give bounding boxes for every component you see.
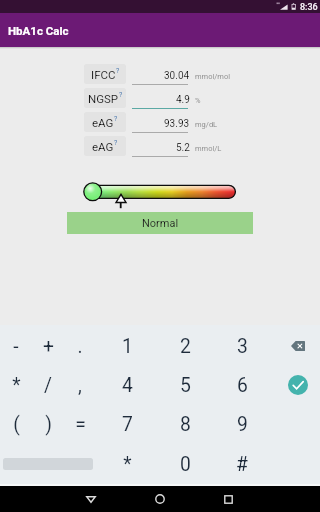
staticText: mmol/L xyxy=(195,144,222,153)
staticText: mmol/mol xyxy=(195,72,231,81)
staticText: 5.2 xyxy=(176,142,190,154)
staticText: . xyxy=(77,335,83,358)
button[interactable]: 4 xyxy=(105,365,149,405)
button[interactable]: 6 xyxy=(220,365,264,405)
staticText: 9 xyxy=(237,413,248,436)
button[interactable]: 0 xyxy=(163,444,207,484)
staticText: 1 xyxy=(122,335,133,358)
button[interactable]: Enter xyxy=(278,365,318,405)
staticText: ( xyxy=(13,413,20,436)
staticText: % xyxy=(195,96,201,105)
button[interactable]: + xyxy=(26,326,70,366)
staticText: = xyxy=(75,413,86,436)
button[interactable]: 5 xyxy=(163,365,207,405)
staticText: # xyxy=(236,453,248,476)
button[interactable]: 4.9 xyxy=(132,88,188,109)
staticText: ) xyxy=(45,413,52,436)
button[interactable]: 2 xyxy=(163,326,207,366)
staticText: 30.04 xyxy=(164,70,190,82)
staticText: + xyxy=(43,335,54,358)
button[interactable]: Back xyxy=(75,486,107,512)
staticText: 93.93 xyxy=(164,118,190,130)
staticText: 0 xyxy=(180,453,191,476)
button[interactable]: # xyxy=(220,444,264,484)
staticText: 8:36 xyxy=(300,2,318,13)
staticText: eAG xyxy=(92,116,114,129)
button[interactable]: 8 xyxy=(163,404,207,444)
button[interactable]: * xyxy=(105,444,149,484)
staticText: Normal xyxy=(142,217,179,230)
button[interactable]: 5.2 xyxy=(132,136,188,157)
button[interactable]: 3 xyxy=(220,326,264,366)
button[interactable]: Backspace xyxy=(278,326,318,366)
button[interactable]: ) xyxy=(26,404,70,444)
staticText: ? xyxy=(114,115,118,123)
button[interactable]: IFCC xyxy=(84,64,126,84)
button[interactable]: NGSP xyxy=(84,88,126,108)
staticText: eAG xyxy=(92,140,114,153)
button[interactable]: 93.93 xyxy=(132,112,188,133)
button[interactable]: Home xyxy=(144,486,176,512)
staticText: 4.9 xyxy=(176,94,190,106)
button[interactable]: eAG xyxy=(84,112,126,132)
button[interactable]: 9 xyxy=(220,404,264,444)
button[interactable]: / xyxy=(26,365,70,405)
button[interactable]: 1 xyxy=(105,326,149,366)
button[interactable]: . xyxy=(58,326,102,366)
staticText: 4 xyxy=(122,374,133,397)
staticText: / xyxy=(44,374,52,397)
staticText: , xyxy=(78,374,82,397)
button[interactable]: 7 xyxy=(105,404,149,444)
staticText: HbA1c Calc xyxy=(8,24,69,37)
staticText: - xyxy=(13,335,19,358)
button[interactable]: 30.04 xyxy=(132,64,188,85)
staticText: NGSP xyxy=(88,92,119,105)
staticText: ? xyxy=(114,139,118,147)
button[interactable]: Recents xyxy=(212,486,244,512)
button[interactable]: - xyxy=(0,326,38,366)
staticText: IFCC xyxy=(91,68,116,81)
staticText: * xyxy=(12,374,21,397)
staticText: 6 xyxy=(237,374,248,397)
staticText: * xyxy=(123,453,132,476)
button[interactable]: = xyxy=(58,404,102,444)
button[interactable]: , xyxy=(58,365,102,405)
button[interactable]: ( xyxy=(0,404,38,444)
staticText: 8 xyxy=(180,413,191,436)
staticText: mg/dL xyxy=(195,120,218,129)
staticText: 3 xyxy=(237,335,248,358)
staticText: 5 xyxy=(180,374,191,397)
staticText: 2 xyxy=(180,335,191,358)
staticText: ? xyxy=(116,67,120,75)
staticText: ? xyxy=(119,91,123,99)
button[interactable]: eAG xyxy=(84,136,126,156)
button[interactable]: * xyxy=(0,365,38,405)
button[interactable]: Normal xyxy=(67,212,253,234)
staticText: 7 xyxy=(122,413,133,436)
